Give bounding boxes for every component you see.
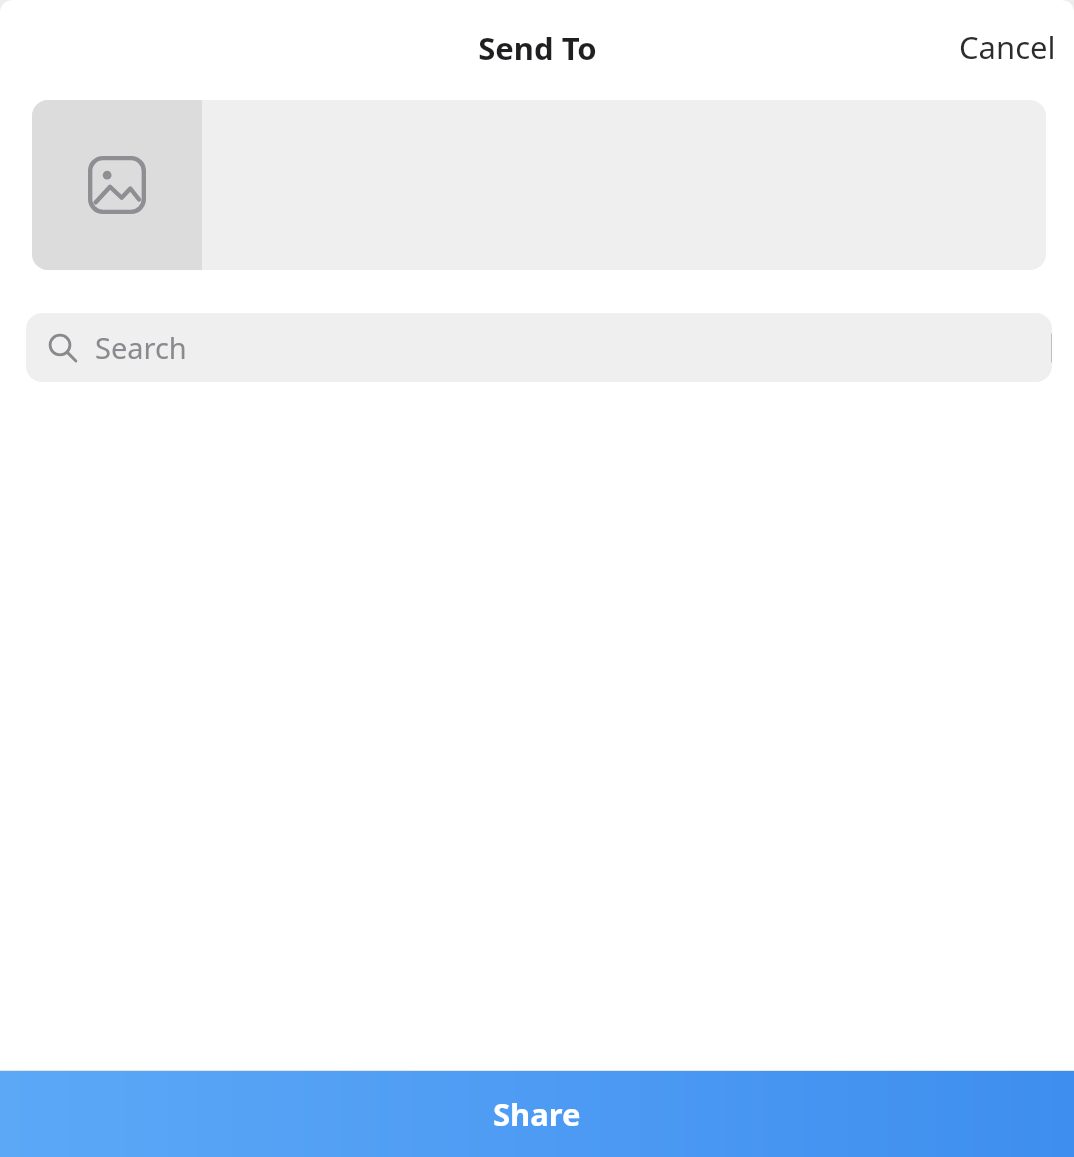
other: Search [48,333,78,363]
button[interactable]: Share [0,1071,1074,1157]
button[interactable]: Cancel [941,14,1074,80]
staticText: Cancel [959,26,1056,68]
other: Image preview [88,156,146,214]
staticText: Send To [478,27,597,69]
button[interactable]: Search [26,313,1052,382]
button[interactable]: Image preview [32,100,1046,270]
staticText: Search [95,328,187,367]
staticText: Share [493,1093,581,1135]
